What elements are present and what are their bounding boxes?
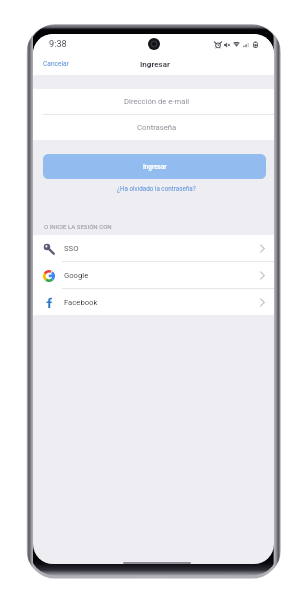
other: Google — [43, 270, 55, 282]
staticText: Ingresar — [140, 60, 170, 69]
button[interactable]: Cancelar — [37, 57, 75, 71]
other: SSO — [43, 243, 55, 255]
button[interactable]: Dirección de e-mail — [33, 89, 274, 114]
button[interactable]: Ingresar — [43, 154, 266, 179]
button[interactable]: Contraseña — [33, 115, 274, 140]
staticText: SSO — [64, 244, 79, 253]
button[interactable]: Facebook — [33, 289, 274, 315]
button[interactable]: SSO — [33, 235, 274, 261]
button[interactable]: ¿Ha olvidado la contraseña? — [112, 183, 201, 194]
staticText: ¿Ha olvidado la contraseña? — [117, 185, 196, 192]
staticText: Google — [64, 271, 89, 280]
other: Facebook — [43, 297, 55, 309]
staticText: Cancelar — [43, 60, 69, 68]
staticText: Ingresar — [143, 163, 167, 171]
staticText: Dirección de e-mail — [124, 97, 190, 106]
staticText: Facebook — [64, 298, 98, 307]
staticText: Contraseña — [137, 123, 177, 132]
button[interactable]: Google — [33, 262, 274, 288]
staticText: O INICIE LA SESIÓN CON — [44, 223, 112, 230]
staticText: 9:38 — [49, 38, 67, 49]
